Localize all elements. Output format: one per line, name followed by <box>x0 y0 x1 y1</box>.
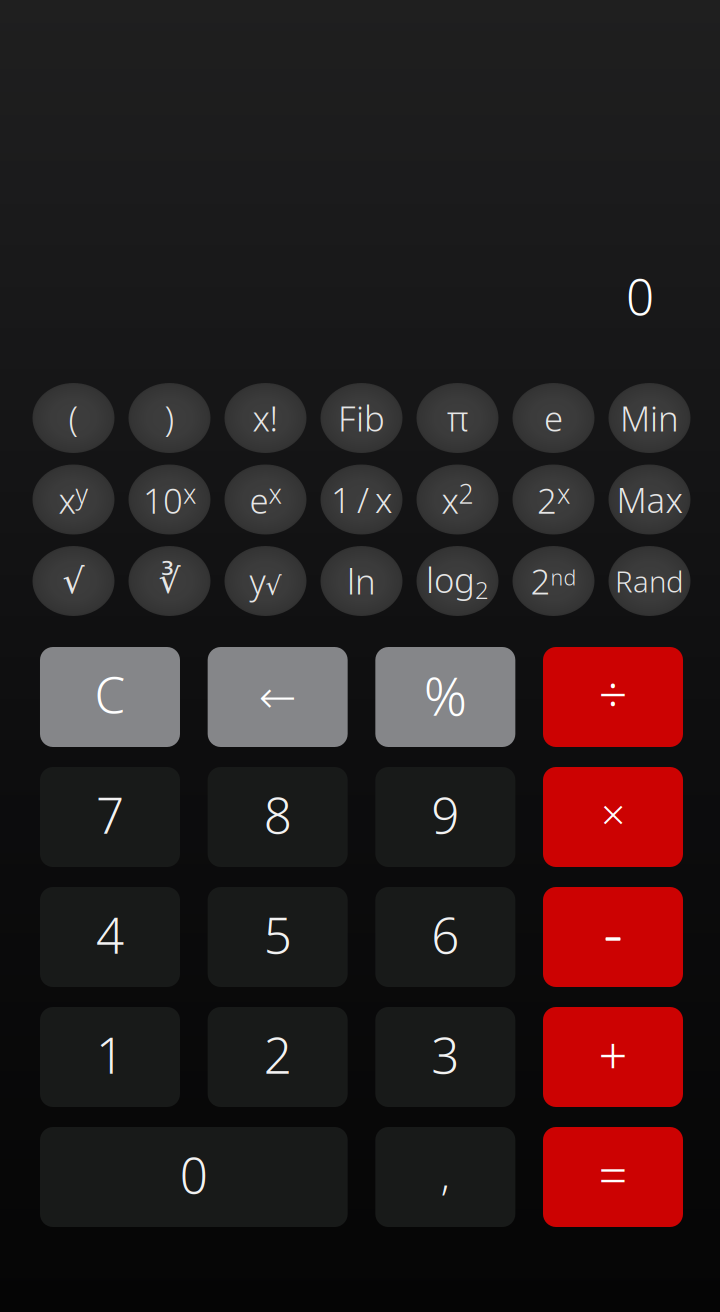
staticText: 1 <box>96 1022 124 1087</box>
staticText: ( <box>68 395 78 441</box>
staticText: 1 / x <box>331 476 392 522</box>
button[interactable]: 6 <box>375 887 515 987</box>
button[interactable]: 3 <box>375 1007 515 1107</box>
staticText: log2 <box>426 556 489 606</box>
staticText: ∛ <box>158 561 180 601</box>
button[interactable]: Second function <box>512 546 594 616</box>
staticText: 5 <box>264 902 292 967</box>
staticText: 2 <box>264 1022 292 1087</box>
button[interactable]: Random <box>608 546 690 616</box>
button[interactable]: 2 <box>208 1007 348 1107</box>
staticText: ln <box>347 558 376 604</box>
staticText: 6 <box>431 902 459 967</box>
staticText: % <box>424 660 467 730</box>
button[interactable]: 5 <box>208 887 348 987</box>
staticText: 4 <box>96 902 124 967</box>
staticText: 7 <box>96 782 124 847</box>
button[interactable]: Maximum <box>608 464 690 534</box>
staticText: y√ <box>249 558 281 604</box>
staticText: ex <box>249 476 281 523</box>
button[interactable]: Plus <box>543 1007 683 1107</box>
button[interactable]: Open parenthesis <box>32 383 114 453</box>
staticText: xy <box>58 476 88 523</box>
staticText: 2nd <box>530 558 576 604</box>
button[interactable]: Delete <box>208 647 348 747</box>
button[interactable]: Log base 2 <box>416 546 498 616</box>
staticText: ) <box>164 395 174 441</box>
staticText: Max <box>616 476 682 522</box>
staticText: = <box>598 1141 627 1208</box>
button[interactable]: Minus <box>543 887 683 987</box>
button[interactable]: y-th root <box>224 546 306 616</box>
button[interactable]: Square root <box>32 546 114 616</box>
button[interactable]: 0 <box>40 1127 348 1227</box>
button[interactable]: 7 <box>40 767 180 867</box>
staticText: 0 <box>180 1142 208 1207</box>
button[interactable]: 9 <box>375 767 515 867</box>
staticText: 2x <box>537 476 570 523</box>
button[interactable]: Pi <box>416 383 498 453</box>
button[interactable]: Percent <box>375 647 515 747</box>
staticText: e <box>544 395 563 441</box>
button[interactable]: Natural logarithm <box>320 546 402 616</box>
button[interactable]: Minimum <box>608 383 690 453</box>
button[interactable]: e to the power of x <box>224 464 306 534</box>
button[interactable]: Equals <box>543 1127 683 1227</box>
staticText: C <box>94 661 125 727</box>
button[interactable]: 1 <box>40 1007 180 1107</box>
button[interactable]: Factorial <box>224 383 306 453</box>
staticText: + <box>598 1021 627 1088</box>
button[interactable]: x to the power of y <box>32 464 114 534</box>
button[interactable]: Fibonacci <box>320 383 402 453</box>
staticText: √ <box>62 561 84 601</box>
staticText: Min <box>620 395 679 441</box>
button[interactable]: Euler's number <box>512 383 594 453</box>
staticText: × <box>601 785 625 842</box>
staticText: Fib <box>338 395 385 441</box>
staticText: 3 <box>431 1022 459 1087</box>
staticText: , <box>441 1148 450 1201</box>
staticText: 0 <box>626 263 654 329</box>
staticText: π <box>447 395 468 441</box>
button[interactable]: Divide <box>543 647 683 747</box>
button[interactable]: 10 to the power of x <box>128 464 210 534</box>
staticText: x2 <box>441 476 473 523</box>
button[interactable]: Clear <box>40 647 180 747</box>
button[interactable]: 2 to the power of x <box>512 464 594 534</box>
staticText: 10x <box>143 476 196 523</box>
button[interactable]: Decimal separator <box>375 1127 515 1227</box>
button[interactable]: Multiply <box>543 767 683 867</box>
button[interactable]: Close parenthesis <box>128 383 210 453</box>
staticText: Rand <box>615 561 684 600</box>
staticText: x! <box>252 395 278 441</box>
button[interactable]: Reciprocal <box>320 464 402 534</box>
button[interactable]: 8 <box>208 767 348 867</box>
staticText: ← <box>259 671 297 723</box>
staticText: ÷ <box>598 660 627 727</box>
staticText: 8 <box>264 782 292 847</box>
button[interactable]: x squared <box>416 464 498 534</box>
staticText: 9 <box>431 782 459 847</box>
button[interactable]: Cube root <box>128 546 210 616</box>
button[interactable]: 4 <box>40 887 180 987</box>
